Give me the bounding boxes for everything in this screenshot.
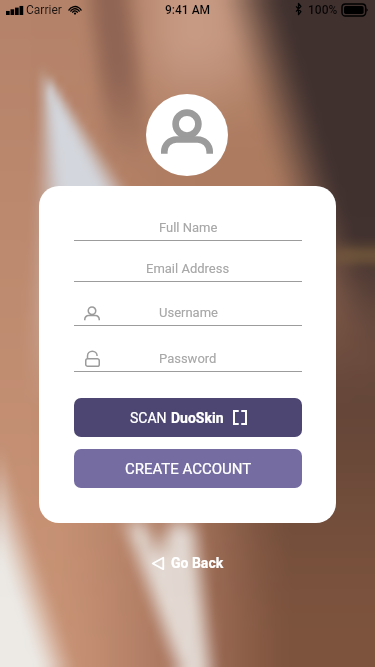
button[interactable]: Password xyxy=(74,348,302,372)
button[interactable]: Go Back xyxy=(142,549,234,577)
button[interactable]: Email Address xyxy=(74,258,302,282)
staticText: 9:41 AM xyxy=(165,3,211,17)
button[interactable]: CREATE ACCOUNT xyxy=(74,449,302,488)
staticText: Password xyxy=(159,351,217,366)
staticText: Go Back xyxy=(171,555,224,571)
staticText: 100% xyxy=(308,3,338,17)
button[interactable]: Full Name xyxy=(74,217,302,241)
button[interactable]: Username xyxy=(74,302,302,326)
staticText: SCAN xyxy=(130,410,171,426)
staticText: Carrier xyxy=(26,3,62,17)
staticText: Full Name xyxy=(159,220,218,235)
staticText: Username xyxy=(159,305,218,320)
button[interactable]: SCAN xyxy=(74,398,302,437)
staticText: DuoSkin xyxy=(171,410,224,426)
staticText: CREATE ACCOUNT xyxy=(125,460,252,478)
staticText: Email Address xyxy=(146,261,230,276)
